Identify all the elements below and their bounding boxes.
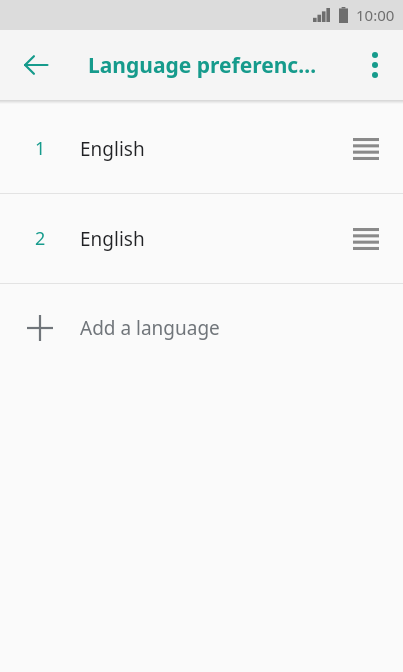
- staticText: 1: [35, 136, 46, 161]
- button[interactable]: 2: [0, 194, 403, 283]
- staticText: 10:00: [356, 5, 395, 25]
- staticText: Language preferenc…: [88, 51, 317, 80]
- button[interactable]: 1: [0, 104, 403, 193]
- staticText: English: [80, 226, 145, 252]
- staticText: Add a language: [80, 315, 220, 341]
- button[interactable]: Reorder: [344, 127, 388, 171]
- staticText: 2: [35, 226, 46, 251]
- button[interactable]: Reorder: [344, 217, 388, 261]
- button[interactable]: More options: [351, 41, 399, 89]
- button[interactable]: Add a language: [0, 284, 403, 372]
- button[interactable]: Back: [10, 39, 62, 91]
- staticText: English: [80, 136, 145, 162]
